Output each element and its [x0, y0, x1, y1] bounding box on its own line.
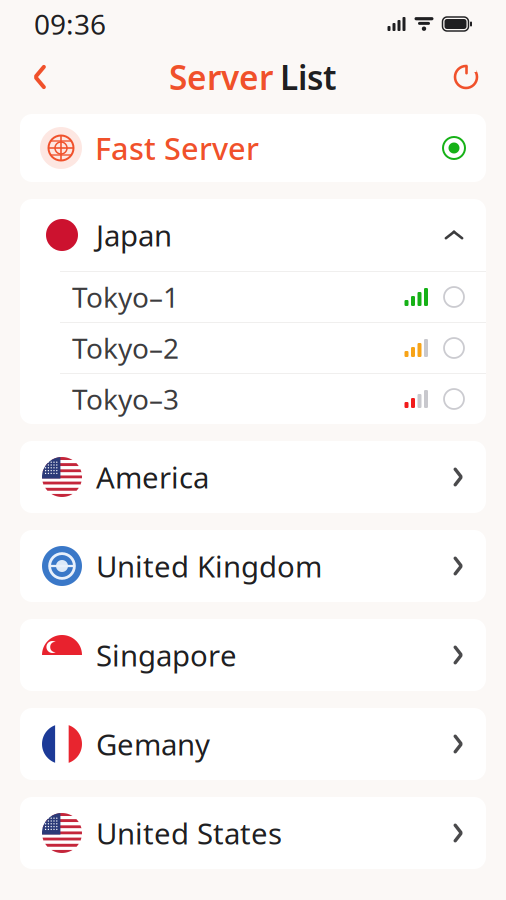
- button[interactable]: Tokyo–3: [20, 374, 486, 424]
- staticText: Singapore: [96, 635, 237, 674]
- staticText: Tokyo–1: [72, 278, 179, 316]
- button[interactable]: Tokyo–1: [20, 272, 486, 322]
- staticText: Tokyo–2: [72, 329, 179, 367]
- button[interactable]: Refresh: [444, 55, 488, 99]
- button[interactable]: Japan: [20, 199, 486, 271]
- staticText: United Kingdom: [96, 546, 322, 585]
- button[interactable]: United Kingdom: [20, 530, 486, 602]
- button[interactable]: Back: [18, 55, 62, 99]
- button[interactable]: Fast Server: [20, 114, 486, 182]
- staticText: Fast Server: [95, 128, 259, 168]
- button[interactable]: United States: [20, 797, 486, 869]
- button[interactable]: Tokyo–2: [20, 323, 486, 373]
- button[interactable]: Gemany: [20, 708, 486, 780]
- staticText: List: [280, 55, 337, 99]
- staticText: Japan: [96, 215, 172, 254]
- staticText: Tokyo–3: [72, 380, 179, 418]
- staticText: Gemany: [96, 724, 210, 763]
- button[interactable]: Singapore: [20, 619, 486, 691]
- staticText: America: [96, 457, 209, 496]
- staticText: United States: [96, 813, 282, 852]
- button[interactable]: America: [20, 441, 486, 513]
- staticText: Server: [169, 55, 273, 99]
- staticText: 09:36: [34, 5, 106, 43]
